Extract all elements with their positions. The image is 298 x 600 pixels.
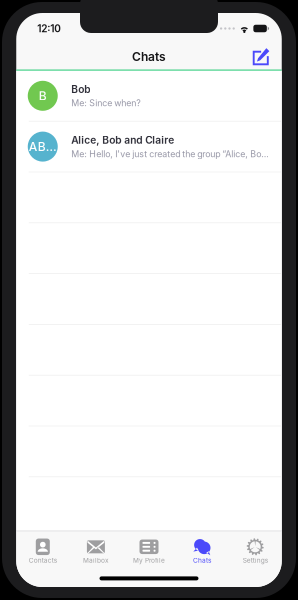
button[interactable]: My Profile xyxy=(122,531,176,566)
staticText: Settings xyxy=(243,556,268,564)
staticText: Bob xyxy=(71,83,90,95)
button[interactable]: Settings xyxy=(229,531,282,566)
staticText: AB… xyxy=(29,139,57,154)
staticText: Me: Since when? xyxy=(71,98,140,108)
staticText: Chats xyxy=(132,49,166,64)
staticText: B xyxy=(39,88,47,103)
button[interactable]: Mailbox xyxy=(69,531,122,566)
staticText: Chats xyxy=(193,556,211,564)
button[interactable]: Chats xyxy=(176,531,229,566)
staticText: Mailbox xyxy=(83,556,109,564)
button[interactable]: Compose xyxy=(250,45,273,69)
staticText: Me: Hello, I've just created the group “… xyxy=(71,149,269,159)
staticText: Contacts xyxy=(29,556,57,564)
button[interactable]: B xyxy=(16,71,282,122)
button[interactable]: Contacts xyxy=(16,531,69,566)
button[interactable]: AB… xyxy=(16,122,282,172)
staticText: 12:10 xyxy=(37,22,61,35)
staticText: My Profile xyxy=(133,556,165,564)
staticText: Alice, Bob and Claire xyxy=(71,134,174,146)
